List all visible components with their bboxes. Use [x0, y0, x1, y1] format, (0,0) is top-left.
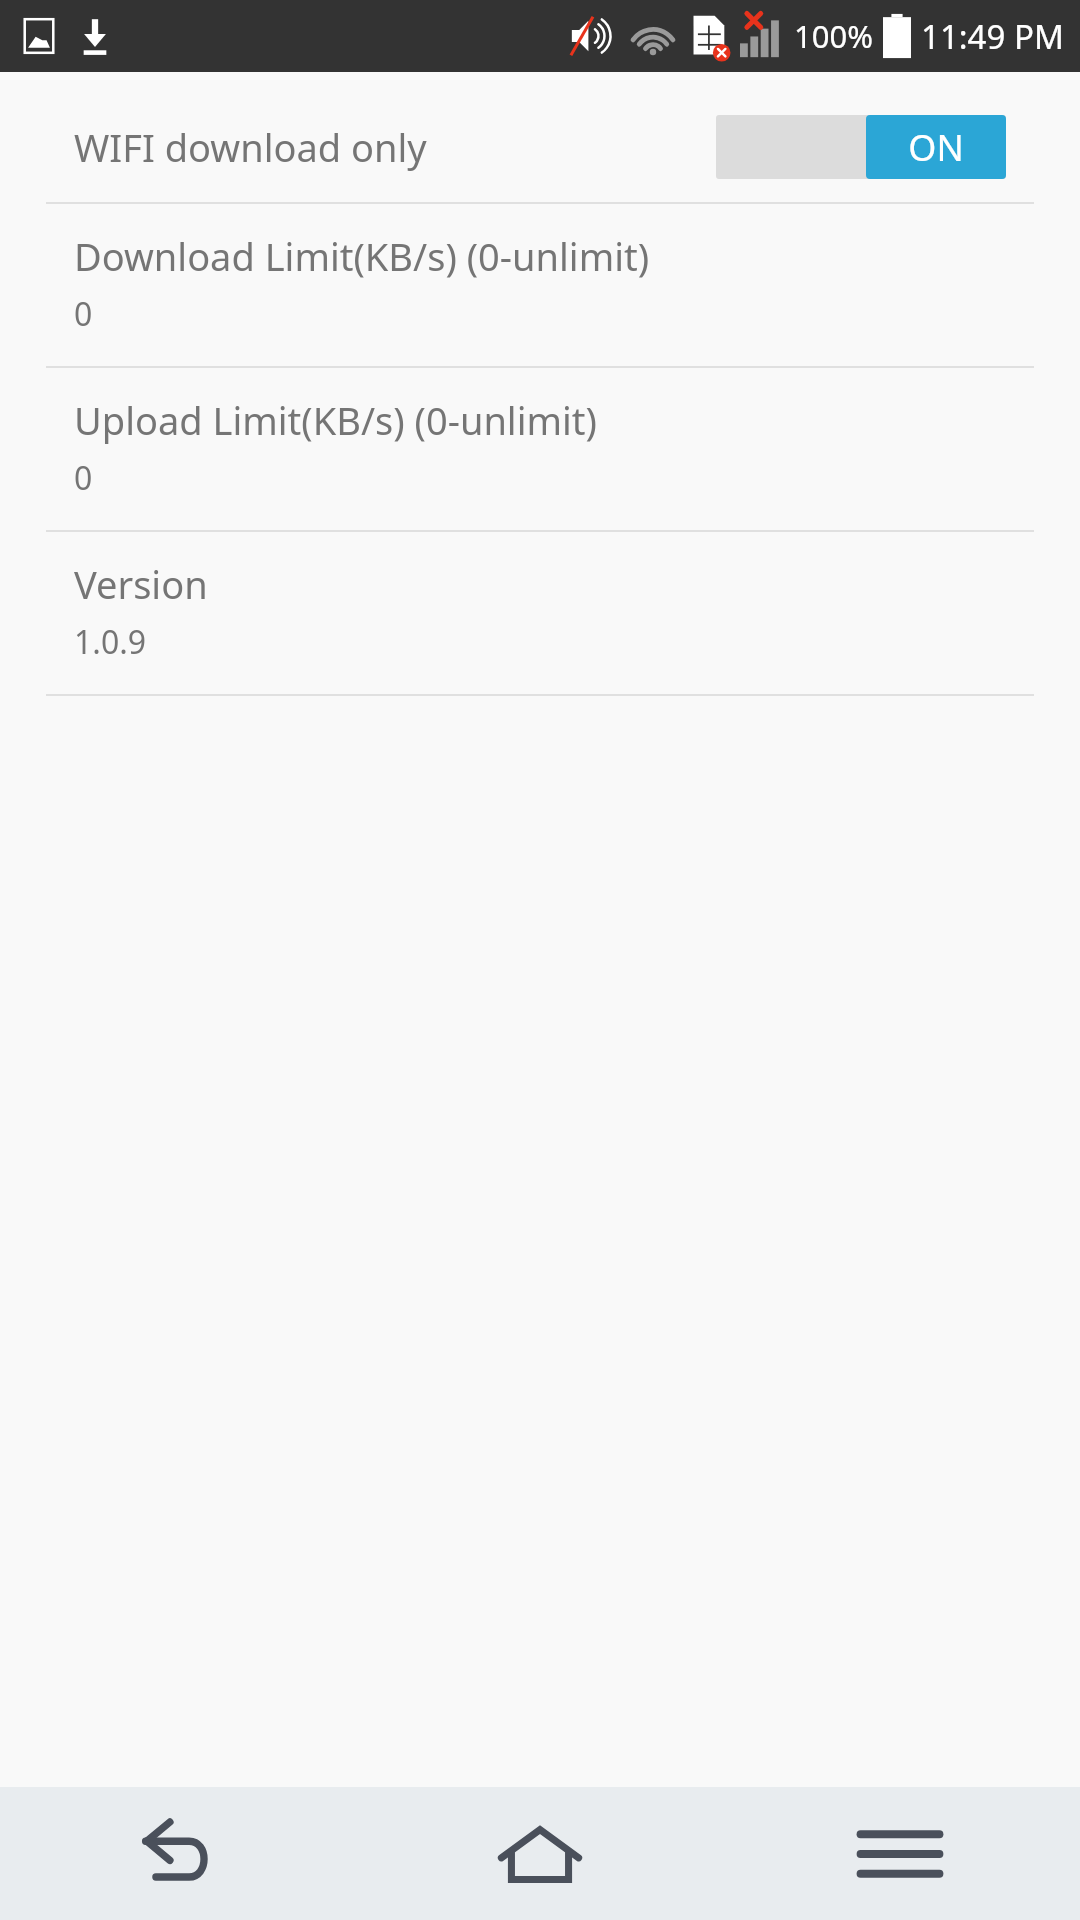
staticText: Download Limit(KB/s) (0-unlimit)	[74, 230, 650, 282]
button[interactable]: Back	[0, 1787, 360, 1920]
staticText: 0	[74, 456, 93, 500]
staticText: ON	[908, 123, 964, 172]
staticText: WIFI download only	[74, 121, 427, 173]
staticText: Version	[74, 558, 208, 610]
staticText: 100%	[794, 15, 873, 57]
button[interactable]: Home	[360, 1787, 720, 1920]
staticText: 11:49 PM	[921, 14, 1064, 59]
button[interactable]: WIFI download only	[0, 92, 1080, 202]
button[interactable]: Recent apps	[720, 1787, 1080, 1920]
button[interactable]: Version	[0, 532, 1080, 694]
button[interactable]: WIFI download only toggle, on	[716, 115, 1006, 179]
button[interactable]: Download Limit(KB/s) (0-unlimit)	[0, 204, 1080, 366]
button[interactable]: Upload Limit(KB/s) (0-unlimit)	[0, 368, 1080, 530]
staticText: Upload Limit(KB/s) (0-unlimit)	[74, 394, 597, 446]
staticText: 0	[74, 292, 93, 336]
staticText: 1.0.9	[74, 620, 147, 664]
